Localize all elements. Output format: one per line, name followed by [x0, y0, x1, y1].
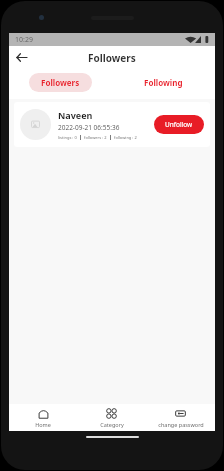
- staticText: Naveen: [58, 109, 93, 121]
- button[interactable]: Following: [132, 73, 195, 92]
- button[interactable]: Naveen: [14, 102, 210, 147]
- staticText: Category: [100, 421, 124, 428]
- button[interactable]: Followers: [29, 73, 92, 92]
- staticText: Following: [144, 77, 183, 88]
- staticText: Followers: [41, 77, 80, 88]
- staticText: listings : 0: [58, 135, 77, 140]
- staticText: followers : 2: [84, 135, 107, 140]
- button[interactable]: Back: [13, 49, 30, 66]
- staticText: Unfollow: [165, 120, 193, 129]
- staticText: following : 2: [114, 135, 137, 140]
- staticText: Home: [35, 421, 51, 428]
- staticText: 2022-09-21 06:55:36: [58, 123, 120, 132]
- staticText: Followers: [88, 51, 136, 65]
- button[interactable]: Category: [77, 404, 146, 431]
- button[interactable]: Home: [9, 404, 77, 431]
- staticText: change password: [158, 421, 204, 428]
- staticText: 10:29: [15, 35, 33, 45]
- button[interactable]: Unfollow: [154, 115, 204, 134]
- button[interactable]: change password: [146, 404, 215, 431]
